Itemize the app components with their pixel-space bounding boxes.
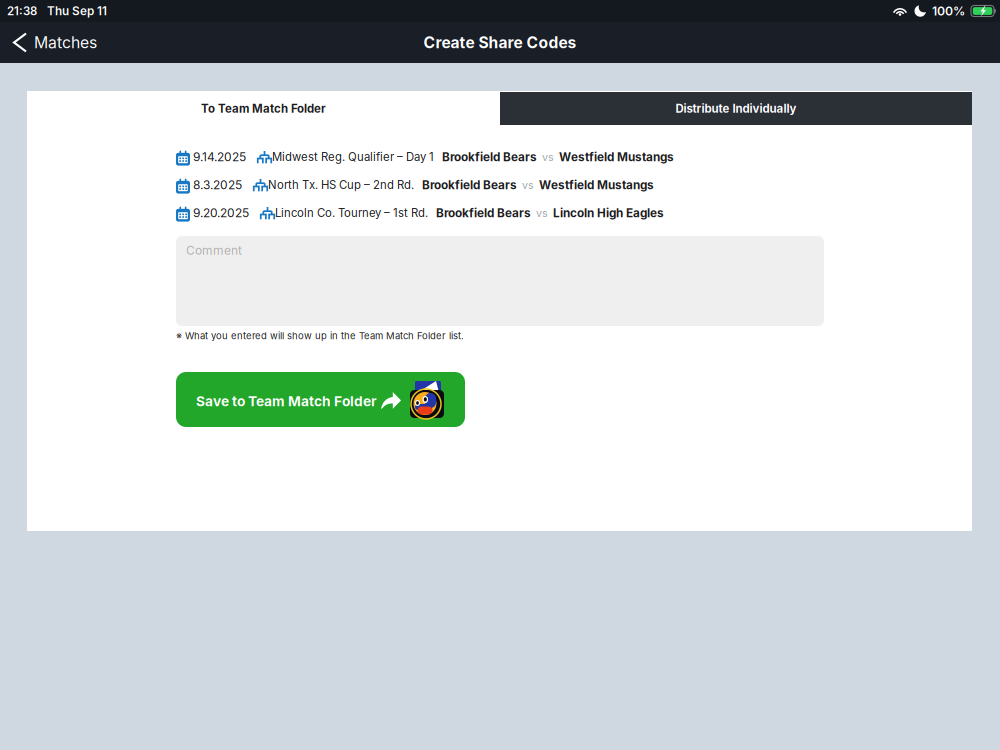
staticText: Thu Sep 11 <box>47 4 107 18</box>
staticText: 21:38 <box>7 4 37 18</box>
staticText: Lincoln High Eagles <box>553 206 664 220</box>
staticText: Brookfield Bears <box>436 206 531 220</box>
staticText: Distribute Individually <box>675 102 796 115</box>
staticText: 8.3.2025 <box>193 178 242 192</box>
staticText: 100% <box>932 4 965 18</box>
staticText: 9.14.2025 <box>193 150 246 164</box>
staticText: ※ What you entered will show up in the T… <box>176 330 464 341</box>
staticText: vs <box>522 178 534 191</box>
staticText: Create Share Codes <box>423 33 576 52</box>
staticText: Brookfield Bears <box>422 178 517 192</box>
staticText: Westfield Mustangs <box>539 178 654 192</box>
staticText: Brookfield Bears <box>442 150 537 164</box>
button[interactable]: To Team Match Folder <box>27 92 500 125</box>
staticText: 9.20.2025 <box>193 206 249 220</box>
button[interactable]: Matches <box>0 22 109 63</box>
staticText: Midwest Reg. Qualifier – Day 1 <box>272 150 434 164</box>
button[interactable]: Save to Team Match Folder <box>176 372 465 427</box>
staticText: Save to Team Match Folder <box>196 393 377 410</box>
staticText: To Team Match Folder <box>201 102 326 115</box>
staticText: vs <box>542 150 554 163</box>
button[interactable]: Distribute Individually <box>500 92 972 125</box>
staticText: Comment <box>186 243 242 257</box>
staticText: Westfield Mustangs <box>559 150 674 164</box>
staticText: Matches <box>34 33 97 52</box>
staticText: Lincoln Co. Tourney – 1st Rd. <box>275 206 428 220</box>
staticText: North Tx. HS Cup – 2nd Rd. <box>268 178 414 192</box>
staticText: vs <box>536 206 548 219</box>
